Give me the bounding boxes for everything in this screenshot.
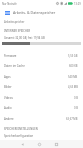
staticText: Apps [4, 75, 11, 79]
staticText: 4,63 MB [68, 85, 78, 89]
button[interactable]: Apps [0, 71, 83, 82]
button[interactable]: Speicherkonfiguration [0, 132, 83, 140]
button[interactable]: Videos [0, 92, 83, 103]
staticText: 0 B [74, 96, 78, 100]
button[interactable]: Recent apps [52, 140, 61, 148]
staticText: INTERNER SPEICHER [4, 29, 31, 32]
staticText: Daten im Cache [4, 64, 25, 68]
button[interactable]: Daten im Cache [0, 61, 83, 71]
button[interactable]: Bilder [0, 82, 83, 92]
staticText: Gesamt: 32,00 GB, frei: 19,94 GB [4, 36, 45, 40]
staticText: Bilder [4, 85, 12, 89]
staticText: Firmware [4, 54, 17, 58]
staticText: Nur Notrufe [2, 2, 17, 6]
staticText: 0 B [74, 106, 78, 110]
staticText: Speicherkonfiguration [4, 134, 34, 138]
staticText: 540 MB [68, 75, 78, 79]
staticText: Videos [4, 96, 13, 100]
staticText: 5,53 GB [68, 54, 78, 58]
staticText: Arbeitsspeicher [4, 20, 25, 24]
staticText: SPEICHEREINSTELLUNGEN [4, 127, 38, 130]
button[interactable]: Navigation menu [3, 8, 12, 17]
button[interactable]: Home [35, 140, 44, 148]
staticText: 600 KB [69, 64, 78, 68]
staticText: 63,67 MB [66, 117, 78, 121]
staticText: Andere [4, 117, 14, 121]
button[interactable]: Back [18, 140, 27, 148]
staticText: Audio [4, 106, 12, 110]
button[interactable]: Audio [0, 103, 83, 113]
button[interactable]: Andere [0, 113, 83, 124]
staticText: 13:29 [74, 2, 81, 6]
staticText: Arbeits- & Datenspeicher [13, 10, 56, 15]
button[interactable]: Firmware [0, 50, 83, 61]
